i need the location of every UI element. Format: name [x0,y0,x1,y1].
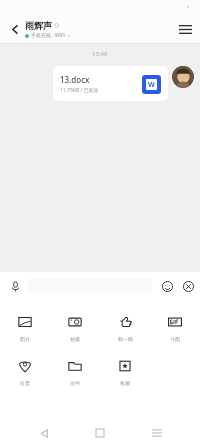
staticText: 13.docx [60,74,90,85]
button[interactable]: Voice input [3,274,27,298]
button[interactable]: Back [31,420,57,446]
staticText: 位置 [20,380,30,386]
staticText: 文件 [70,380,80,386]
button[interactable]: 位置 [0,356,50,386]
button[interactable]: 收藏 [100,356,150,386]
staticText: 斗图 [170,336,180,342]
staticText: 11.75KB / 已发送 [60,87,99,94]
button[interactable]: Menu [172,16,198,42]
button[interactable]: Avatar [172,66,194,88]
button[interactable]: 13.docx [53,66,168,101]
staticText: 手机在线 · WiFi [31,32,65,39]
button[interactable]: Back [4,18,26,40]
button[interactable]: Close panel [177,275,199,297]
button[interactable]: Emoji [156,275,178,297]
staticText: 戳一戳 [118,336,133,342]
button[interactable]: 文件 [50,356,100,386]
staticText: 雨辉声 [25,20,52,31]
button[interactable]: 图片 [0,312,50,342]
staticText: 15:46 [92,50,108,58]
button[interactable]: 斗图 [150,312,200,342]
button[interactable]: Home [87,420,113,446]
staticText: 拍摄 [70,336,80,342]
staticText: 收藏 [120,380,130,386]
button[interactable]: 拍摄 [50,312,100,342]
button[interactable]: Recents [144,420,170,446]
button[interactable]: 戳一戳 [100,312,150,342]
staticText: W [148,80,155,90]
staticText: 图片 [20,336,30,342]
